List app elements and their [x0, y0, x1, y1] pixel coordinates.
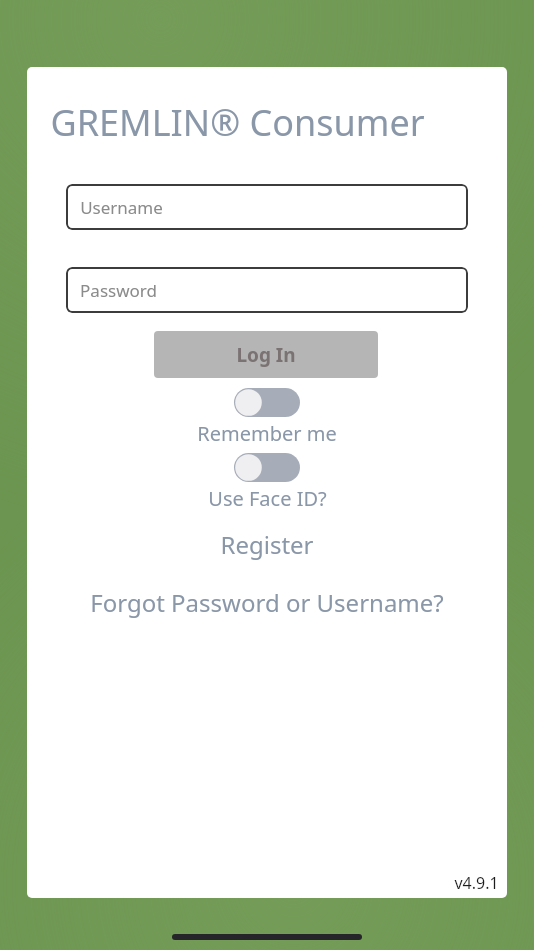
staticText: Log In [236, 342, 296, 368]
button[interactable]: Use Face ID toggle [234, 453, 300, 482]
staticText: GREMLIN® Consumer [50, 98, 425, 147]
button[interactable]: Username [66, 184, 468, 230]
staticText: Forgot Password or Username? [90, 586, 444, 619]
button[interactable]: Log In [154, 331, 378, 378]
button[interactable]: Register [27, 528, 507, 561]
button[interactable]: Use Face ID? [27, 485, 507, 512]
button[interactable]: Forgot Password or Username? [27, 586, 507, 619]
button[interactable]: Remember me toggle [234, 388, 300, 417]
button[interactable]: Remember me [27, 420, 507, 447]
staticText: Register [220, 528, 314, 561]
staticText: Password [80, 279, 157, 302]
button[interactable]: Password [66, 267, 468, 313]
staticText: Use Face ID? [208, 485, 327, 512]
staticText: v4.9.1 [454, 872, 499, 894]
staticText: Username [80, 196, 163, 219]
staticText: Remember me [197, 420, 337, 447]
